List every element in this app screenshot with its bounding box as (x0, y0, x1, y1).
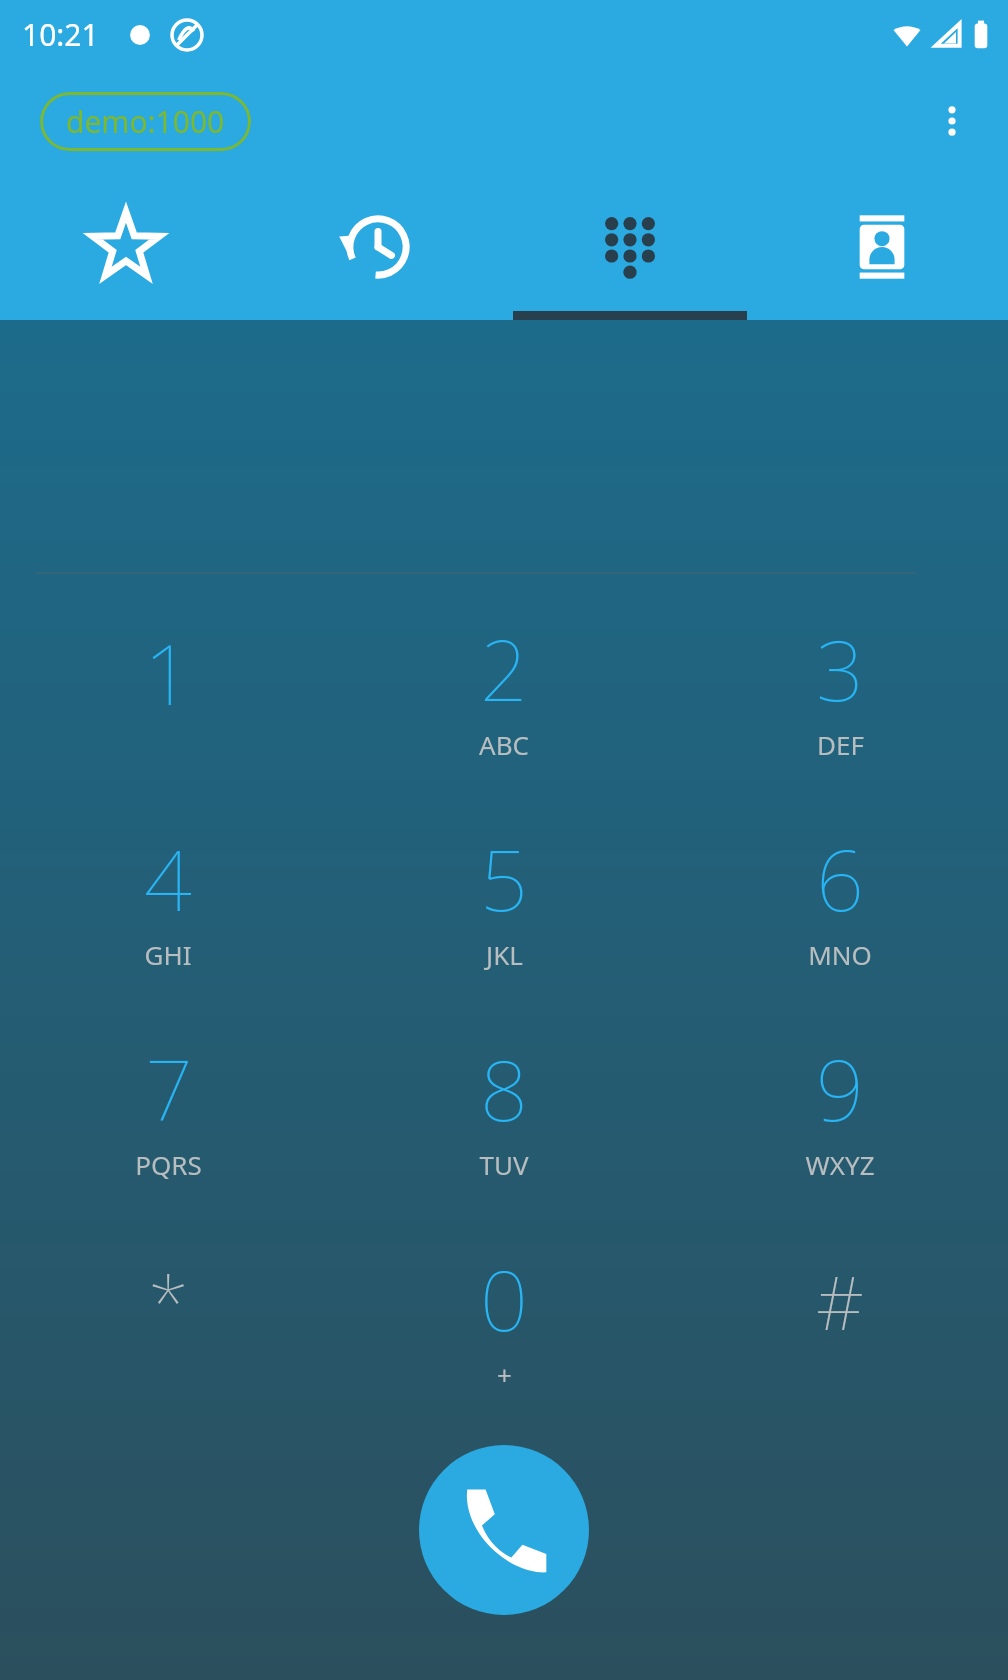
staticText: DEF (817, 727, 864, 762)
staticText: GHI (144, 937, 192, 972)
button[interactable]: 9 (672, 1001, 1008, 1211)
staticText: ABC (479, 727, 529, 762)
staticText: MNO (808, 937, 872, 972)
button[interactable]: 5 (336, 791, 672, 1001)
button[interactable]: demo:1000 (40, 92, 251, 151)
button[interactable]: Contacts (756, 173, 1008, 320)
button[interactable]: 0 (336, 1211, 672, 1421)
staticText: TUV (479, 1147, 529, 1182)
staticText: PQRS (135, 1147, 202, 1182)
button[interactable]: 2 (336, 582, 672, 791)
staticText: 3 (816, 611, 864, 725)
staticText: + (497, 1357, 512, 1392)
button[interactable]: Favorites (0, 173, 252, 320)
button[interactable]: Call (419, 1445, 589, 1615)
staticText: WXYZ (805, 1147, 875, 1182)
staticText: 6 (816, 821, 864, 935)
button[interactable]: 7 (0, 1001, 336, 1211)
staticText: demo:1000 (66, 101, 225, 142)
staticText: * (148, 1251, 189, 1352)
button[interactable]: 3 (672, 582, 1008, 791)
button[interactable]: Recents (252, 173, 504, 320)
button[interactable]: 4 (0, 791, 336, 1001)
button[interactable]: 8 (336, 1001, 672, 1211)
button[interactable]: * (0, 1211, 336, 1421)
staticText: 5 (480, 821, 528, 935)
staticText: JKL (486, 937, 523, 972)
staticText: 8 (480, 1031, 528, 1145)
staticText: 10:21 (22, 14, 99, 55)
staticText: 2 (480, 611, 528, 725)
staticText: 9 (816, 1031, 864, 1145)
staticText: 7 (145, 1031, 193, 1145)
staticText: 0 (480, 1241, 528, 1355)
staticText: 1 (144, 615, 192, 729)
button[interactable]: More options (924, 93, 980, 149)
staticText: 4 (144, 821, 192, 935)
button[interactable]: # (672, 1211, 1008, 1421)
button[interactable]: 1 (0, 582, 336, 791)
button[interactable]: 6 (672, 791, 1008, 1001)
staticText: # (816, 1251, 864, 1352)
button[interactable]: Dialpad (504, 173, 756, 320)
